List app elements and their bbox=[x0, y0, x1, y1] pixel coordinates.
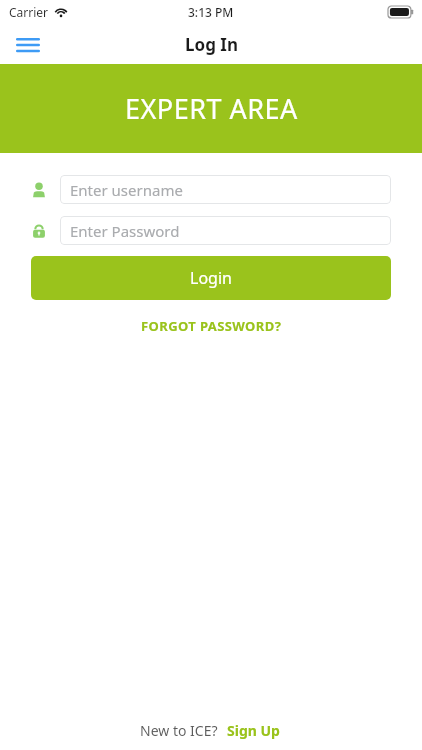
staticText: Enter Password bbox=[70, 221, 180, 241]
staticText: EXPERT AREA bbox=[125, 90, 298, 127]
button[interactable]: Enter Password bbox=[60, 216, 391, 245]
staticText: Carrier bbox=[9, 4, 49, 20]
button[interactable]: FORGOT PASSWORD? bbox=[133, 314, 290, 338]
staticText: 3:13 PM bbox=[188, 4, 234, 20]
button[interactable]: Enter username bbox=[60, 175, 391, 204]
button[interactable]: Login bbox=[31, 256, 391, 300]
staticText: Sign Up bbox=[227, 721, 280, 740]
staticText: New to ICE? bbox=[140, 721, 218, 740]
staticText: Login bbox=[190, 267, 232, 289]
button[interactable]: Open navigation menu bbox=[10, 26, 46, 62]
button[interactable]: Sign Up bbox=[225, 719, 282, 742]
staticText: FORGOT PASSWORD? bbox=[141, 317, 282, 335]
staticText: Log In bbox=[185, 33, 238, 56]
staticText: Enter username bbox=[70, 180, 183, 200]
